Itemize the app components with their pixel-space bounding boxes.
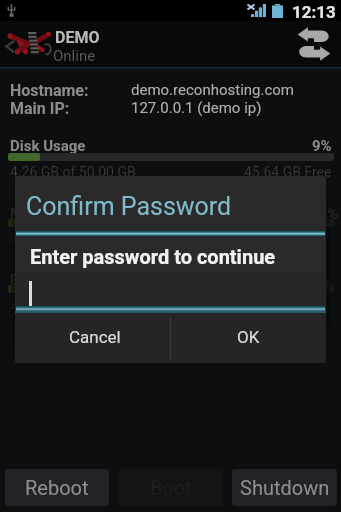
staticText: OK <box>237 327 260 347</box>
staticText: Bandwidth Usage <box>10 271 128 289</box>
staticText: Reboot <box>25 476 89 499</box>
button[interactable]: Cancel <box>15 313 170 363</box>
staticText: Main IP: <box>10 99 70 118</box>
button[interactable]: OK <box>171 313 326 363</box>
staticText: 979 GB Free <box>245 296 321 312</box>
staticText: 45.64 GB Free <box>244 164 332 180</box>
staticText: Shutdown <box>240 476 330 499</box>
staticText: DEMO <box>55 28 100 47</box>
staticText: 4.26 GB of 50.00 GB <box>10 164 136 180</box>
staticText: 9% <box>312 137 332 155</box>
staticText: Confirm Password <box>26 192 232 221</box>
button[interactable] <box>16 272 325 311</box>
staticText: Online <box>53 47 96 65</box>
staticText: demo.reconhosting.com <box>131 81 295 99</box>
staticText: 2% <box>310 271 330 289</box>
staticText: Boot <box>150 476 192 499</box>
staticText: Disk Usage <box>10 137 86 155</box>
staticText: Cancel <box>69 327 121 347</box>
staticText: 0.64 GB Free <box>245 230 325 246</box>
staticText: 0.36 GB of 1.00 GB <box>10 230 128 246</box>
button[interactable]: Shutdown <box>232 469 337 506</box>
staticText: Memory Usage <box>10 205 112 223</box>
button[interactable]: Refresh <box>293 23 335 65</box>
button[interactable]: Reboot <box>5 469 109 506</box>
staticText: Hostname: <box>10 81 89 100</box>
staticText: Enter password to continue <box>30 245 276 268</box>
staticText: 12:13 <box>292 2 336 22</box>
staticText: 20.45 GB of 1000 GB <box>10 296 140 312</box>
staticText: 127.0.0.1 (demo ip) <box>131 99 262 117</box>
staticText: 36% <box>310 205 339 223</box>
